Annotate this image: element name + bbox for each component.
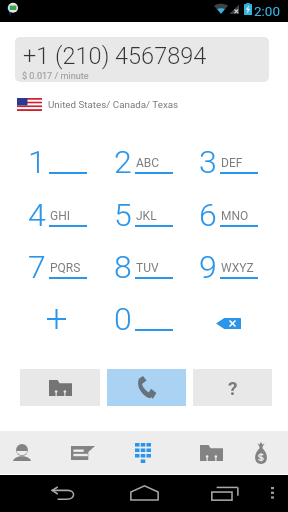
staticText: JKL	[136, 209, 157, 223]
button[interactable]: 2	[108, 137, 174, 183]
staticText: 2:00	[254, 3, 281, 19]
button[interactable]: Call	[107, 369, 186, 406]
staticText: ?	[228, 377, 238, 399]
staticText: 5	[114, 196, 132, 234]
button[interactable]: 5	[108, 190, 174, 236]
staticText: 1	[28, 143, 46, 181]
button[interactable]: 7	[22, 242, 88, 288]
staticText: United States/ Canada/ Texas	[48, 99, 179, 110]
staticText: 6	[199, 196, 217, 234]
button[interactable]: Credit	[230, 431, 288, 474]
staticText: PQRS	[50, 261, 81, 275]
staticText: 4	[28, 196, 46, 234]
button[interactable]: Contacts	[0, 431, 57, 474]
button[interactable]: Backspace	[207, 308, 251, 338]
button[interactable]: Dialpad	[114, 431, 172, 474]
staticText: 3	[199, 143, 217, 181]
button[interactable]: United States/ Canada/ Texas	[17, 96, 179, 112]
staticText: WXYZ	[221, 261, 254, 275]
staticText: $ 0.017 / minute	[22, 71, 89, 82]
staticText: TUV	[136, 261, 159, 275]
staticText: MNO	[221, 209, 249, 223]
button[interactable]: Store	[20, 369, 100, 406]
staticText: ABC	[136, 156, 160, 170]
button[interactable]: Messages	[57, 431, 114, 474]
button[interactable]: 4	[22, 190, 88, 236]
button[interactable]: 3	[193, 137, 259, 183]
button[interactable]: +1 (210) 4567894	[15, 37, 269, 82]
button[interactable]: 6	[193, 190, 259, 236]
staticText: GHI	[50, 209, 70, 223]
button[interactable]: Help	[193, 369, 272, 406]
staticText: 0	[114, 300, 132, 338]
staticText: 7	[28, 248, 46, 286]
button[interactable]: Recents	[198, 475, 250, 512]
staticText: 8	[114, 248, 132, 286]
button[interactable]: 9	[193, 242, 259, 288]
button[interactable]	[40, 302, 73, 335]
button[interactable]: 8	[108, 242, 174, 288]
button[interactable]: 1	[22, 137, 88, 183]
button[interactable]: Store	[172, 431, 230, 474]
button[interactable]: Back	[36, 475, 92, 512]
staticText: +1 (210) 4567894	[23, 42, 207, 70]
button[interactable]: Home	[117, 475, 173, 512]
staticText: 2	[114, 143, 132, 181]
staticText: DEF	[221, 156, 243, 170]
staticText: 9	[199, 248, 217, 286]
button[interactable]: 0	[108, 294, 174, 340]
button[interactable]: More options	[255, 475, 288, 512]
